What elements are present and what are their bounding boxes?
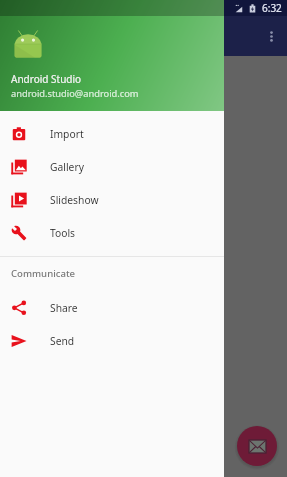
button[interactable]: More options bbox=[257, 22, 285, 50]
staticText: Import bbox=[50, 127, 84, 141]
staticText: 6:32 bbox=[262, 1, 282, 15]
staticText: Slideshow bbox=[50, 193, 99, 207]
staticText: Send bbox=[50, 334, 75, 348]
button[interactable]: Import bbox=[0, 117, 224, 150]
staticText: android.studio@android.com bbox=[11, 87, 139, 100]
staticText: Android Studio bbox=[11, 72, 82, 86]
button[interactable]: Gallery bbox=[0, 150, 224, 183]
button[interactable]: Send bbox=[0, 324, 224, 357]
staticText: Share bbox=[50, 301, 78, 315]
staticText: Gallery bbox=[50, 160, 84, 174]
button[interactable]: Share bbox=[0, 291, 224, 324]
button[interactable]: Send email bbox=[237, 426, 277, 466]
button[interactable]: Slideshow bbox=[0, 183, 224, 216]
staticText: Tools bbox=[50, 226, 76, 240]
button[interactable]: Tools bbox=[0, 216, 224, 249]
staticText: Communicate bbox=[11, 267, 76, 280]
